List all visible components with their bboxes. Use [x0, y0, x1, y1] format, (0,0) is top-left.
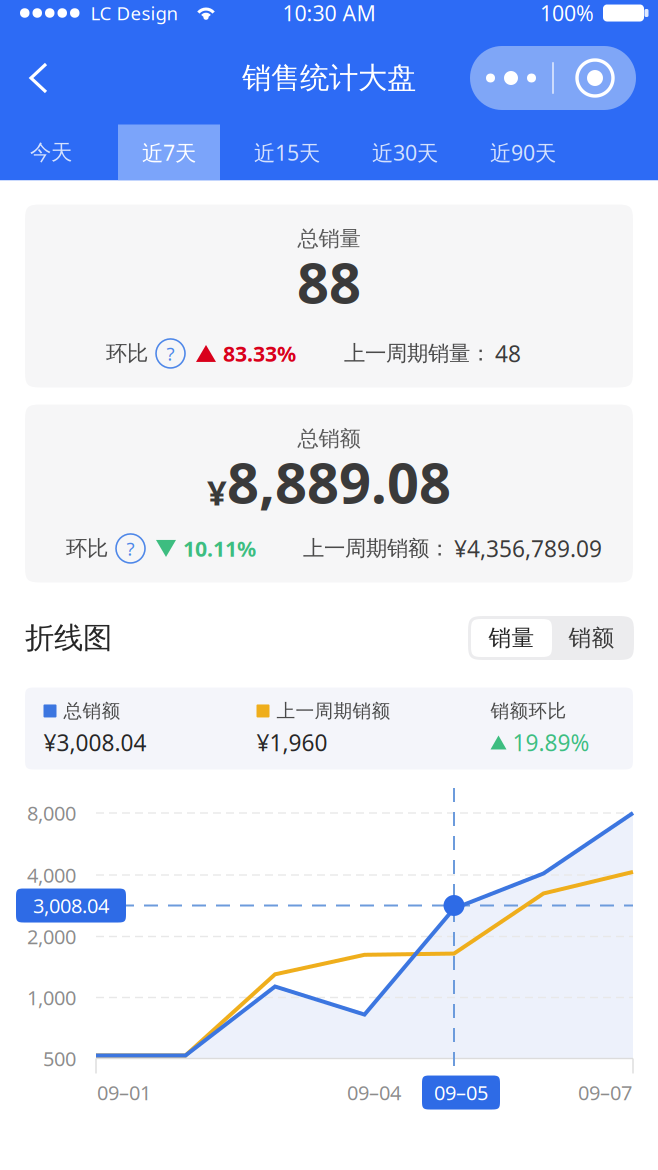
- staticText: 总销量: [297, 225, 360, 252]
- staticText: 4,000: [27, 862, 76, 888]
- staticText: 10:30 AM: [282, 0, 375, 27]
- staticText: 近15天: [254, 138, 320, 167]
- staticText: ¥: [207, 469, 227, 515]
- staticText: 09–04: [347, 1079, 401, 1106]
- staticText: ?: [166, 341, 174, 366]
- staticText: 3,008.04: [33, 892, 109, 919]
- staticText: 环比: [106, 340, 148, 366]
- button[interactable]: 销量: [471, 619, 552, 657]
- staticText: ?: [126, 536, 134, 561]
- staticText: 83.33%: [223, 339, 296, 368]
- staticText: 销售统计大盘: [242, 60, 416, 96]
- staticText: 1,000: [27, 984, 76, 1011]
- staticText: 100%: [540, 0, 594, 27]
- staticText: 88: [297, 245, 361, 319]
- staticText: 环比: [66, 535, 108, 561]
- staticText: LC Design: [90, 1, 178, 25]
- staticText: ¥1,960: [256, 727, 327, 757]
- staticText: ¥3,008.04: [43, 727, 146, 757]
- staticText: 总销额: [63, 699, 120, 722]
- button[interactable]: 近90天: [464, 124, 582, 180]
- staticText: 近90天: [490, 138, 556, 167]
- staticText: 近7天: [142, 138, 196, 167]
- staticText: 09–01: [97, 1079, 151, 1106]
- staticText: 近30天: [372, 138, 438, 167]
- staticText: 折线图: [25, 620, 112, 656]
- staticText: 今天: [30, 139, 72, 166]
- staticText: 09–07: [578, 1079, 632, 1106]
- button[interactable]: 近30天: [346, 124, 464, 180]
- button[interactable]: 近15天: [228, 124, 346, 180]
- staticText: 09–05: [434, 1079, 488, 1106]
- button[interactable]: Back: [0, 48, 74, 108]
- staticText: 上一周期销量：: [344, 340, 491, 366]
- button[interactable]: 销额: [552, 619, 631, 657]
- staticText: 总销额: [297, 425, 360, 452]
- staticText: 销量: [488, 624, 534, 652]
- button[interactable]: More: [470, 46, 636, 110]
- button[interactable]: 近7天: [110, 124, 228, 180]
- button[interactable]: 今天: [0, 124, 110, 180]
- staticText: 48: [495, 338, 521, 368]
- staticText: ¥4,356,789.09: [454, 533, 602, 563]
- staticText: 500: [43, 1045, 76, 1072]
- staticText: 销额环比: [490, 699, 566, 722]
- staticText: 上一周期销额: [276, 699, 390, 722]
- staticText: 上一周期销额：: [303, 535, 450, 561]
- staticText: 8,000: [27, 800, 76, 826]
- staticText: 销额: [568, 624, 614, 652]
- staticText: 10.11%: [183, 534, 256, 563]
- staticText: 2,000: [27, 923, 76, 950]
- staticText: 19.89%: [512, 727, 589, 757]
- staticText: 8,889.08: [227, 445, 451, 519]
